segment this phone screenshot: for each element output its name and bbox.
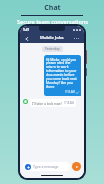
- staticText: I'll take a look now!: [32, 101, 62, 105]
- button[interactable]: Send: [72, 162, 81, 171]
- staticText: 7:15 AM: [65, 90, 75, 94]
- button[interactable]: More options: [74, 35, 81, 42]
- button[interactable]: Contact avatar: [23, 99, 28, 104]
- staticText: 7:18 AM: [64, 101, 74, 105]
- staticText: Hi Mieke, could you please send the retu…: [46, 57, 79, 89]
- staticText: 9:41: [23, 28, 30, 32]
- staticText: Yesterday: [45, 47, 60, 51]
- button[interactable]: Type a message: [23, 162, 70, 171]
- staticText: Mobile Jobs: [40, 35, 64, 41]
- staticText: Type a message: [33, 164, 59, 169]
- button[interactable]: I'll take a look now!: [30, 99, 76, 107]
- staticText: Chat: [44, 3, 61, 13]
- button[interactable]: Back: [23, 35, 30, 42]
- button[interactable]: Hi Mieke, could you please send the retu…: [44, 55, 81, 96]
- staticText: Secure team conversations: [17, 18, 88, 25]
